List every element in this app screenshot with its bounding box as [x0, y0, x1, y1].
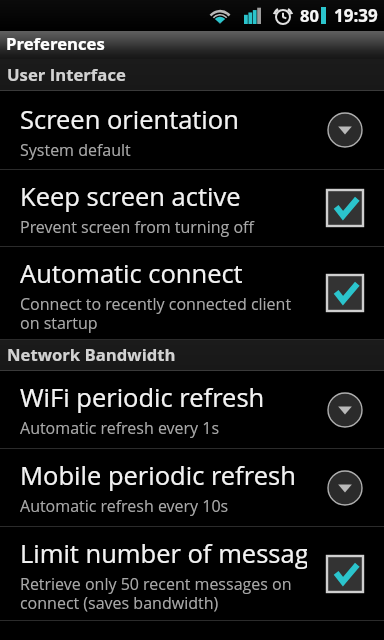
other: Wi-Fi — [209, 6, 231, 24]
staticText: Automatic refresh every 1s — [20, 417, 220, 439]
staticText: Connect to recently connected client on … — [20, 293, 307, 333]
button[interactable]: Automatic connect — [0, 247, 384, 339]
button[interactable]: Toggle — [313, 266, 377, 320]
staticText: WiFi periodic refresh — [20, 380, 265, 415]
staticText: Preferences — [6, 32, 105, 55]
staticText: User Interface — [7, 63, 126, 86]
staticText: Mobile periodic refresh — [20, 458, 296, 493]
staticText: 80 — [300, 4, 319, 26]
button[interactable]: Open list — [313, 103, 377, 157]
staticText: Automatic connect — [20, 256, 243, 291]
staticText: Retrieve only 50 recent messages on conn… — [20, 573, 307, 613]
staticText: Automatic refresh every 10s — [20, 495, 229, 517]
staticText: Prevent screen from turning off — [20, 216, 254, 238]
staticText: Network Bandwidth — [7, 343, 176, 366]
button[interactable]: Toggle — [313, 181, 377, 235]
other: Signal strength — [244, 7, 261, 24]
staticText: System default — [20, 139, 131, 161]
staticText: Screen orientation — [20, 102, 239, 137]
other: Alarm set — [274, 5, 292, 25]
staticText: Keep screen active — [20, 179, 241, 214]
button[interactable]: Keep screen active — [0, 170, 384, 246]
staticText: Limit number of messages — [20, 536, 307, 571]
button[interactable]: WiFi periodic refresh — [0, 371, 384, 448]
button[interactable]: Toggle — [313, 547, 377, 601]
button[interactable]: Open list — [313, 461, 377, 515]
button[interactable]: Mobile periodic refresh — [0, 449, 384, 526]
button[interactable]: Limit number of messages — [0, 527, 384, 620]
button[interactable]: Screen orientation — [0, 91, 384, 169]
staticText: 19:39 — [334, 4, 378, 27]
button[interactable]: Open list — [313, 383, 377, 437]
